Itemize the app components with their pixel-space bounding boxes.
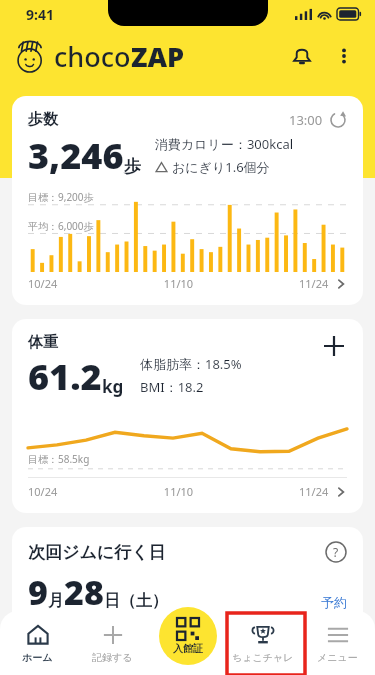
- button[interactable]: Add weight: [321, 333, 347, 359]
- staticText: 目標：58.5kg: [28, 452, 90, 466]
- staticText: ?: [333, 544, 339, 560]
- staticText: 61.2: [28, 352, 102, 401]
- button[interactable]: ちょこチャレ: [225, 611, 300, 675]
- staticText: ホーム: [22, 651, 53, 664]
- staticText: おにぎり1.6個分: [172, 158, 270, 176]
- staticText: BMI：18.2: [140, 378, 204, 396]
- button[interactable]: Notifications: [281, 35, 323, 77]
- staticText: 3,246: [28, 131, 124, 180]
- staticText: choco: [54, 38, 131, 75]
- staticText: ちょこチャレ: [232, 651, 294, 664]
- staticText: 記録する: [92, 651, 133, 664]
- staticText: 11/24: [299, 484, 329, 499]
- staticText: メニュー: [317, 651, 358, 664]
- staticText: 9:41: [26, 5, 54, 24]
- staticText: 10/24: [28, 276, 58, 291]
- staticText: 11/10: [58, 484, 299, 499]
- staticText: 予約: [321, 594, 347, 610]
- staticText: 体重: [28, 333, 58, 352]
- button[interactable]: 次回ジムに行く日: [12, 527, 363, 669]
- staticText: 歩数: [28, 110, 58, 129]
- staticText: 28: [64, 569, 104, 615]
- staticText: kg: [102, 375, 124, 398]
- staticText: 11/24: [299, 276, 329, 291]
- staticText: ZAP: [131, 38, 185, 75]
- staticText: 入館証: [173, 642, 203, 655]
- button[interactable]: 体重: [12, 319, 363, 513]
- staticText: 平均：6,000歩: [28, 219, 94, 233]
- button[interactable]: Help: [325, 541, 347, 563]
- button[interactable]: More options: [323, 35, 365, 77]
- button[interactable]: 入館証: [159, 607, 217, 665]
- staticText: 月: [48, 591, 64, 611]
- button[interactable]: メニュー: [300, 611, 375, 675]
- button[interactable]: ホーム: [0, 611, 75, 675]
- staticText: 次回ジムに行く日: [28, 542, 166, 563]
- staticText: 日（土）: [104, 591, 168, 611]
- staticText: 消費カロリー：300kcal: [155, 135, 294, 153]
- staticText: 体脂肪率：18.5%: [140, 355, 242, 373]
- staticText: 10/24: [28, 484, 58, 499]
- button[interactable]: 歩数: [12, 96, 363, 305]
- button[interactable]: choco: [14, 38, 185, 75]
- staticText: 11/10: [58, 276, 299, 291]
- button[interactable]: 記録する: [75, 611, 150, 675]
- staticText: 13:00: [289, 111, 323, 129]
- button[interactable]: Refresh: [329, 111, 347, 129]
- staticText: 歩: [124, 156, 141, 177]
- staticText: 9: [28, 569, 48, 615]
- staticText: 目標：9,200歩: [28, 190, 94, 204]
